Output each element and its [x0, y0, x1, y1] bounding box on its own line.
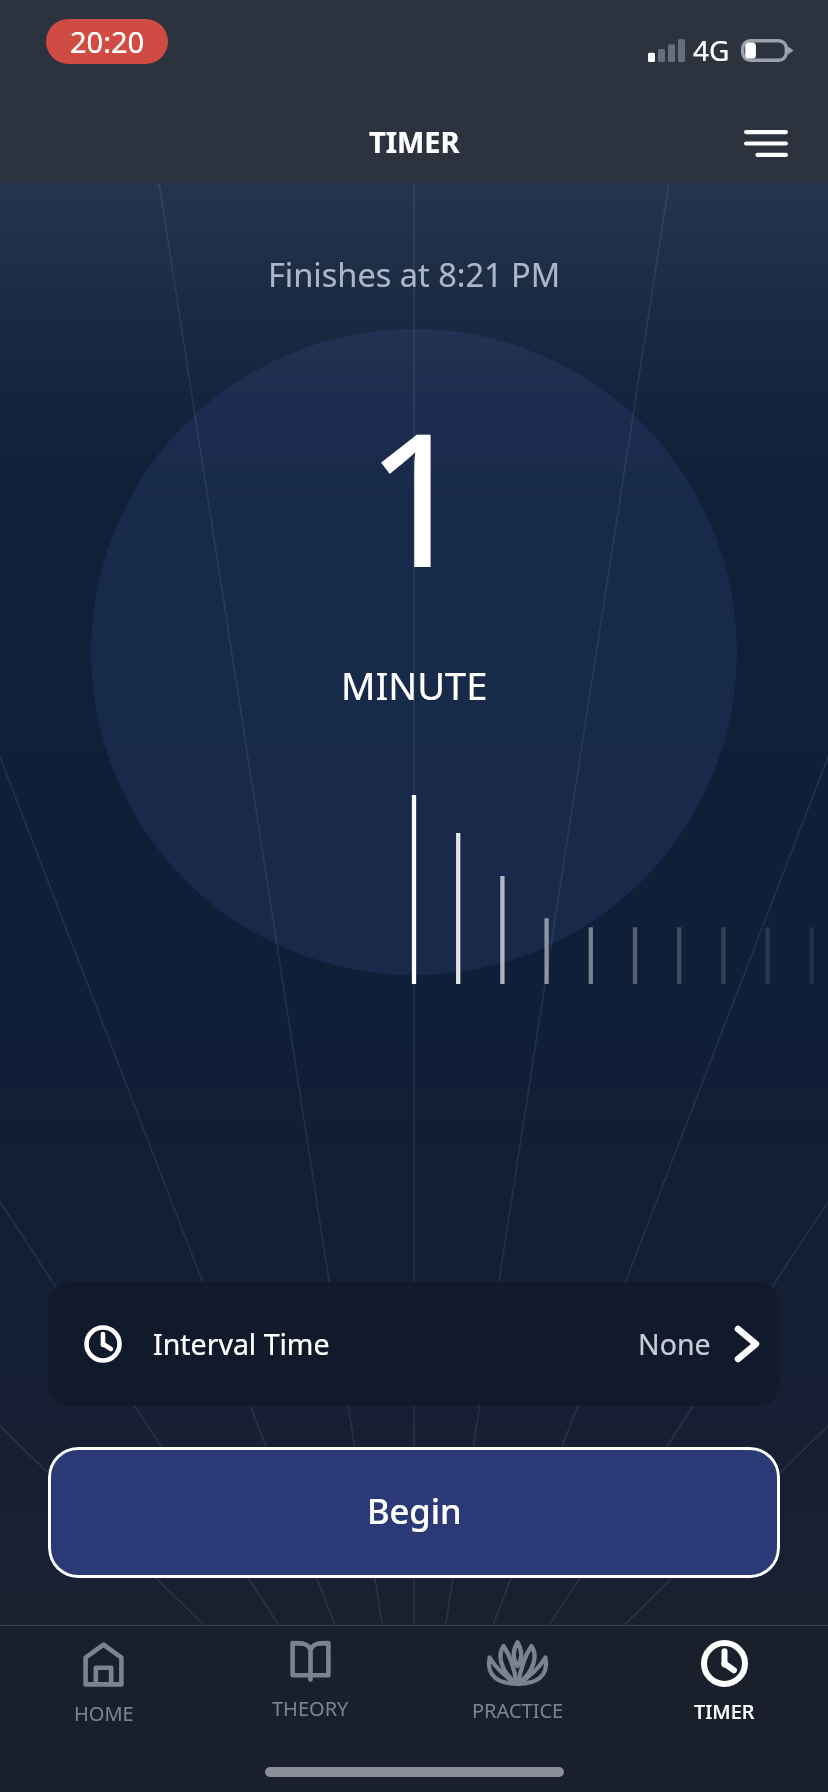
staticText: TIMER	[369, 122, 460, 161]
button[interactable]: THEORY	[207, 1626, 414, 1748]
staticText: Finishes at 8:21 PM	[268, 252, 561, 296]
staticText: 20:20	[70, 22, 145, 61]
button[interactable]: HOME	[0, 1626, 207, 1748]
button[interactable]: Menu	[733, 112, 799, 174]
staticText: THEORY	[272, 1695, 349, 1722]
staticText: None	[638, 1325, 711, 1364]
staticText: 4G	[693, 31, 730, 69]
staticText: Begin	[367, 1487, 462, 1534]
staticText: MINUTE	[341, 659, 488, 711]
button[interactable]: Interval Time	[48, 1282, 780, 1406]
staticText: PRACTICE	[472, 1697, 564, 1724]
staticText: 1	[365, 370, 471, 621]
button[interactable]: Begin	[48, 1447, 780, 1578]
button[interactable]: TIMER	[621, 1626, 828, 1748]
staticText: TIMER	[694, 1698, 755, 1725]
button[interactable]: PRACTICE	[414, 1626, 621, 1748]
staticText: Interval Time	[153, 1325, 330, 1364]
staticText: HOME	[74, 1700, 134, 1727]
